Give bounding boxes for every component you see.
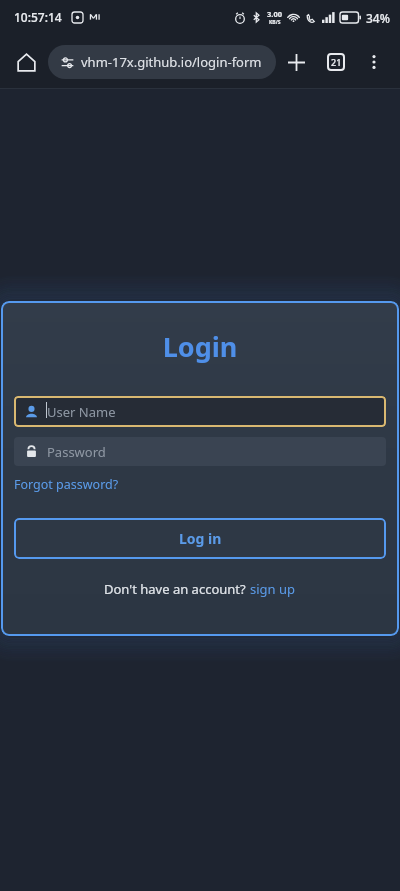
staticText: 21	[331, 56, 342, 68]
button[interactable]: Password	[14, 437, 386, 466]
button[interactable]: Home	[8, 44, 44, 80]
button[interactable]: sign up	[250, 580, 296, 598]
button[interactable]: Forgot password?	[14, 476, 119, 493]
staticText: vhm-17x.github.io/login-form	[81, 53, 262, 71]
staticText: KB/S	[269, 19, 281, 26]
staticText: User Name	[47, 403, 116, 421]
staticText: 34%	[366, 10, 390, 26]
staticText: Log in	[179, 529, 222, 548]
staticText: Forgot password?	[14, 476, 119, 493]
button[interactable]: User Name	[14, 396, 386, 427]
staticText: Don't have an account?	[104, 580, 250, 598]
button[interactable]: Tabs	[316, 42, 356, 82]
staticText: Password	[47, 443, 106, 461]
staticText: Login	[14, 328, 386, 365]
button[interactable]: More options	[356, 44, 392, 80]
button[interactable]: New tab	[276, 42, 316, 82]
button[interactable]: Log in	[14, 518, 386, 559]
button[interactable]: vhm-17x.github.io/login-form	[48, 45, 276, 79]
staticText: 3.00	[267, 9, 282, 19]
staticText: sign up	[250, 580, 296, 598]
staticText: 10:57:14	[14, 9, 62, 25]
